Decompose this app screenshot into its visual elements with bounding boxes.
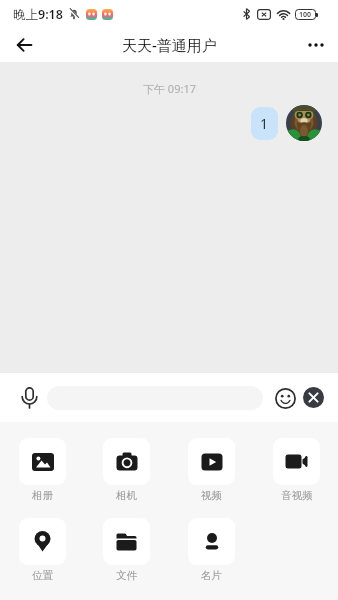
button[interactable]: 相册 bbox=[19, 438, 66, 502]
staticText: 位置 bbox=[32, 569, 53, 582]
staticText: 相机 bbox=[116, 489, 137, 502]
staticText: 100 bbox=[299, 10, 312, 20]
button[interactable]: 位置 bbox=[19, 518, 66, 582]
button[interactable]: 1 bbox=[251, 107, 278, 140]
button[interactable] bbox=[286, 105, 322, 141]
button[interactable] bbox=[10, 31, 38, 59]
staticText: 名片 bbox=[201, 569, 222, 582]
button[interactable]: 名片 bbox=[188, 518, 235, 582]
staticText: 晚上9:18 bbox=[13, 6, 63, 23]
button[interactable] bbox=[17, 386, 41, 410]
staticText: 相册 bbox=[32, 489, 53, 502]
staticText: 下午 09:17 bbox=[143, 81, 196, 96]
button[interactable] bbox=[302, 31, 330, 59]
button[interactable]: 相机 bbox=[103, 438, 150, 502]
staticText: 天天-普通用户 bbox=[122, 35, 217, 55]
staticText: 文件 bbox=[116, 569, 137, 582]
button[interactable] bbox=[303, 387, 324, 408]
button[interactable]: 视频 bbox=[188, 438, 235, 502]
staticText: 视频 bbox=[201, 489, 222, 502]
button[interactable]: 音视频 bbox=[273, 438, 320, 502]
button[interactable] bbox=[273, 386, 297, 410]
button[interactable]: 文件 bbox=[103, 518, 150, 582]
staticText: 音视频 bbox=[281, 489, 313, 502]
staticText: 1 bbox=[260, 114, 269, 133]
